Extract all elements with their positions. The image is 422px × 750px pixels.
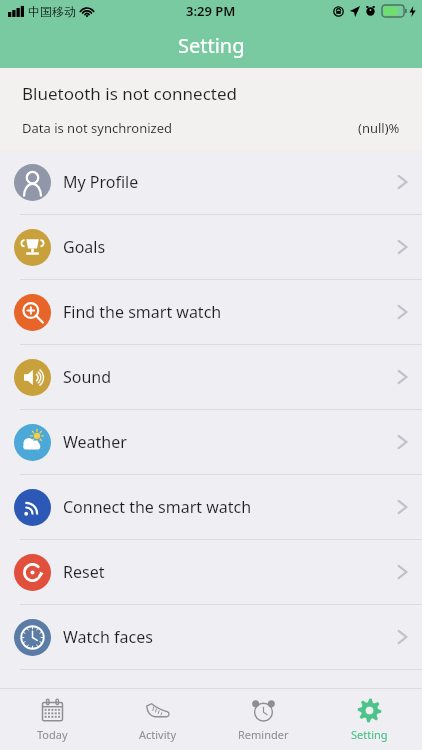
staticText: Reset	[63, 561, 105, 583]
staticText: Setting	[351, 727, 388, 742]
staticText: Sound	[63, 366, 112, 388]
staticText: 3:29 PM	[186, 2, 236, 20]
staticText: Activity	[139, 727, 177, 742]
staticText: My Profile	[63, 171, 139, 193]
staticText: Bluetooth is not connected	[22, 82, 237, 105]
button[interactable]: Reminder	[210, 689, 316, 750]
button[interactable]: Watch faces	[0, 605, 422, 669]
staticText: Watch faces	[63, 626, 153, 648]
staticText: Reminder	[238, 727, 289, 742]
button[interactable]: Weather	[0, 410, 422, 474]
button[interactable]: Today	[0, 689, 105, 750]
staticText: 中国移动	[28, 4, 76, 19]
staticText: Setting	[178, 32, 245, 59]
staticText: Data is not synchronized	[22, 119, 173, 137]
button[interactable]: My Profile	[0, 150, 422, 214]
button[interactable]: Sound	[0, 345, 422, 409]
button[interactable]: Connect the smart watch	[0, 475, 422, 539]
staticText: Goals	[63, 236, 106, 258]
button[interactable]: Setting	[316, 689, 422, 750]
button[interactable]: Goals	[0, 215, 422, 279]
staticText: Connect the smart watch	[63, 496, 252, 518]
button[interactable]: Reset	[0, 540, 422, 604]
staticText: Today	[37, 727, 68, 742]
staticText: (null)%	[358, 119, 400, 137]
button[interactable]: Activity	[105, 689, 210, 750]
staticText: Find the smart watch	[63, 301, 222, 323]
button[interactable]: Find the smart watch	[0, 280, 422, 344]
staticText: Weather	[63, 431, 127, 453]
